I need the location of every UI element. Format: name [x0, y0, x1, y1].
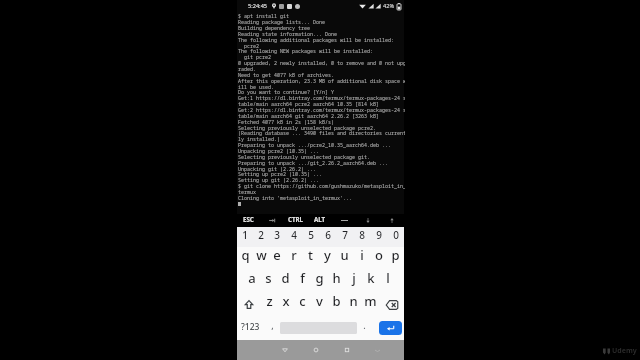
button[interactable]: j	[345, 270, 362, 293]
button[interactable]: Up	[380, 214, 404, 227]
button[interactable]: 4	[285, 227, 302, 247]
button[interactable]: 7	[336, 227, 353, 247]
button[interactable]: 9	[370, 227, 387, 247]
staticText: l	[386, 269, 390, 287]
button[interactable]: a	[244, 270, 260, 293]
staticText: 3	[274, 228, 280, 242]
staticText: Fetched 4077 kB in 2s (158 kB/s)	[238, 119, 335, 126]
staticText: Udemy	[612, 346, 637, 356]
staticText: p	[391, 246, 400, 264]
button[interactable]: ?123	[237, 316, 265, 340]
button[interactable]: Recents	[331, 340, 362, 360]
staticText: v	[316, 292, 323, 310]
staticText: table/main aarch64 git aarch64 2.26.2 [3…	[238, 113, 380, 120]
staticText: 42%	[383, 2, 395, 10]
staticText: The following additional packages will b…	[238, 37, 395, 44]
button[interactable]: Enter	[379, 321, 402, 335]
button[interactable]: h	[328, 270, 345, 293]
staticText: Setting up pcre2 (10.35) ...	[238, 171, 323, 178]
button[interactable]: b	[328, 293, 345, 316]
staticText: Cloning into 'metasploit_in_termux'...	[238, 195, 353, 202]
button[interactable]: m	[362, 293, 379, 316]
button[interactable]: Down	[356, 214, 380, 227]
button[interactable]: q	[237, 247, 253, 270]
staticText: i	[360, 246, 364, 264]
staticText: 4	[291, 228, 297, 242]
staticText: pcre2	[238, 43, 260, 50]
staticText: f	[300, 269, 305, 287]
button[interactable]: l	[379, 270, 396, 293]
button[interactable]: g	[311, 270, 328, 293]
button[interactable]: 3	[269, 227, 285, 247]
staticText: h	[332, 269, 341, 287]
button[interactable]: 6	[319, 227, 336, 247]
staticText: a	[248, 269, 256, 287]
button[interactable]: ,	[265, 316, 280, 340]
staticText: 0 upgraded, 2 newly installed, 0 to remo…	[238, 60, 405, 67]
button[interactable]: Back	[269, 340, 300, 360]
staticText: 5:24:45	[248, 2, 268, 10]
staticText: w	[256, 246, 267, 264]
staticText: ly installed.)	[238, 136, 281, 143]
button[interactable]: d	[277, 270, 294, 293]
button[interactable]: t	[302, 247, 319, 270]
button[interactable]: 8	[353, 227, 370, 247]
button[interactable]: v	[311, 293, 328, 316]
staticText: Preparing to unpack .../pcre2_10.35_aarc…	[238, 142, 392, 149]
staticText: b	[332, 292, 341, 310]
button[interactable]: 2	[253, 227, 269, 247]
staticText: s	[265, 269, 272, 287]
button[interactable]: r	[285, 247, 302, 270]
button[interactable]: w	[253, 247, 269, 270]
staticText: (Reading database ... 3490 files and dir…	[238, 130, 405, 137]
button[interactable]: .	[357, 316, 372, 340]
button[interactable]: ESC	[237, 214, 260, 227]
staticText: $ git clone https://github.com/gushmazuk…	[238, 183, 405, 190]
button[interactable]: s	[260, 270, 277, 293]
button[interactable]: e	[269, 247, 285, 270]
staticText: 6	[325, 228, 331, 242]
staticText: d	[281, 269, 290, 287]
staticText: Get:2 https://dl.bintray.com/termux/term…	[238, 107, 405, 114]
staticText: o	[375, 246, 383, 264]
staticText: CTRL	[288, 215, 304, 223]
button[interactable]: o	[370, 247, 387, 270]
staticText: Do you want to continue? [Y/n] Y	[238, 89, 335, 96]
button[interactable]: 0	[387, 227, 404, 247]
button[interactable]: f	[294, 270, 311, 293]
button[interactable]: k	[362, 270, 379, 293]
button[interactable]: 5	[302, 227, 319, 247]
staticText: e	[273, 246, 281, 264]
staticText: ?123	[241, 321, 260, 333]
button[interactable]: Minus	[332, 214, 356, 227]
button[interactable]: z	[261, 293, 277, 316]
staticText: Get:1 https://dl.bintray.com/termux/term…	[238, 95, 405, 102]
button[interactable]: y	[319, 247, 336, 270]
staticText: termux	[238, 189, 257, 196]
staticText: Need to get 4077 kB of archives.	[238, 72, 335, 79]
button[interactable]: Shift	[237, 293, 261, 316]
button[interactable]: i	[353, 247, 370, 270]
button[interactable]: x	[277, 293, 294, 316]
staticText: Selecting previously unselected package …	[238, 125, 377, 132]
staticText: j	[352, 269, 356, 287]
button[interactable]: n	[345, 293, 362, 316]
staticText: t	[308, 246, 313, 264]
button[interactable]: ALT	[308, 214, 332, 227]
button[interactable]: Home	[300, 340, 331, 360]
button[interactable]: CTRL	[284, 214, 308, 227]
staticText: y	[324, 246, 331, 264]
staticText: .	[363, 319, 366, 331]
button[interactable]: u	[336, 247, 353, 270]
staticText: git pcre2	[238, 54, 272, 61]
button[interactable]: c	[294, 293, 311, 316]
button[interactable]: p	[387, 247, 404, 270]
staticText: n	[349, 292, 358, 310]
button[interactable]: Tab	[260, 214, 284, 227]
button[interactable]: Backspace	[379, 293, 404, 316]
button[interactable]: 1	[237, 227, 253, 247]
staticText: m	[364, 292, 377, 310]
staticText: Setting up git (2.26.2) ...	[238, 177, 320, 184]
